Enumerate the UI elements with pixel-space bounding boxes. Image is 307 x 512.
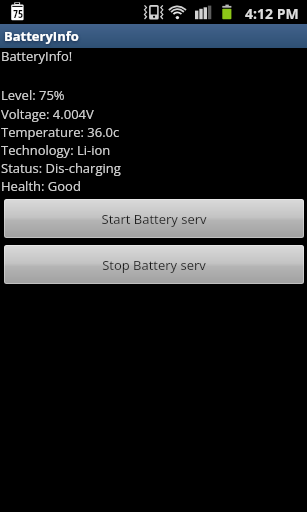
staticText: BatteryInfo (4, 27, 79, 45)
staticText: Status: Dis-charging (1, 159, 121, 177)
staticText: Voltage: 4.004V (1, 105, 94, 123)
button[interactable]: Start Battery serv (4, 199, 304, 238)
staticText: 4:12 PM (245, 4, 299, 23)
staticText: BatteryInfo! (1, 47, 73, 65)
staticText: Health: Good (1, 177, 81, 195)
staticText: 75 (13, 6, 24, 21)
button[interactable]: Stop Battery serv (4, 245, 304, 284)
staticText: Level: 75% (1, 86, 65, 104)
staticText: Start Battery serv (101, 210, 207, 228)
staticText: Stop Battery serv (102, 256, 206, 274)
staticText: Temperature: 36.0c (1, 123, 120, 141)
staticText: Technology: Li-ion (1, 141, 111, 159)
